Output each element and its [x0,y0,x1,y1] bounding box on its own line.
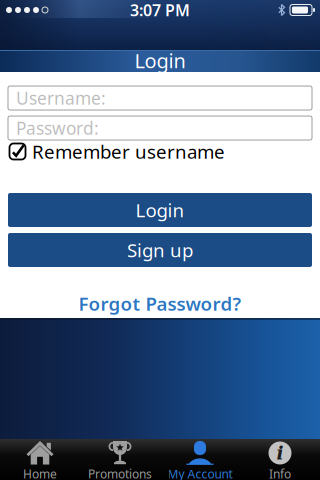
staticText: Login [135,198,184,222]
button[interactable]: Promotions [80,439,160,480]
button[interactable]: Home [0,439,80,480]
staticText: 3:07 PM [130,0,190,21]
staticText: Home [23,466,57,480]
staticText: Login [134,47,185,74]
button[interactable]: Password: [0,116,320,140]
button[interactable]: Forgot Password? [78,291,241,316]
staticText: Username: [16,86,106,109]
staticText: Forgot Password? [78,291,241,316]
staticText: Promotions [88,466,152,480]
staticText: Sign up [127,238,193,262]
staticText: Password: [16,116,99,139]
button[interactable]: My Account [160,439,240,480]
staticText: Info [269,466,291,480]
button[interactable]: i [240,439,320,480]
button[interactable]: Login [0,193,320,227]
button[interactable]: Remember username [0,139,320,164]
staticText: i [276,442,283,464]
staticText: My Account [167,466,232,480]
button[interactable]: Sign up [0,233,320,267]
button[interactable]: Username: [0,86,320,110]
staticText: Remember username [32,139,225,164]
